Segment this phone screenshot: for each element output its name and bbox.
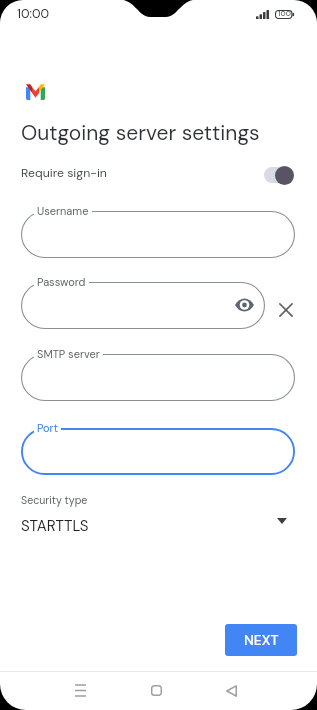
button[interactable]: Username <box>21 211 295 258</box>
button[interactable]: Home <box>136 671 176 710</box>
staticText: SMTP server <box>37 347 100 361</box>
button[interactable]: Show password <box>233 294 255 316</box>
staticText: Port <box>37 421 58 435</box>
staticText: 100 <box>278 9 291 19</box>
staticText: Username <box>37 204 89 218</box>
staticText: Security type <box>21 493 88 507</box>
button[interactable]: Password <box>21 282 265 329</box>
staticText: 10:00 <box>17 6 50 22</box>
button[interactable]: Port <box>21 428 295 475</box>
button[interactable]: Recent apps <box>60 671 100 710</box>
staticText: Outgoing server settings <box>21 119 260 146</box>
staticText: STARTTLS <box>21 516 89 536</box>
button[interactable]: NEXT <box>225 624 297 656</box>
staticText: Require sign-in <box>21 165 107 181</box>
button[interactable]: Require sign-in <box>262 163 294 187</box>
button[interactable]: Clear <box>274 298 298 322</box>
staticText: Password <box>37 275 86 289</box>
button[interactable]: STARTTLS <box>21 515 295 537</box>
button[interactable]: SMTP server <box>21 354 295 401</box>
button[interactable]: Back <box>211 671 251 710</box>
staticText: NEXT <box>244 631 279 649</box>
